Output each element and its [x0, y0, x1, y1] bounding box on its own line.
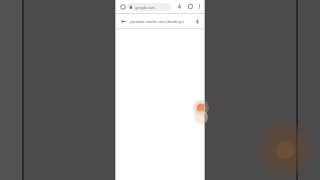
- staticText: google.com: [135, 5, 155, 10]
- button[interactable]: Back: [119, 17, 127, 25]
- button[interactable]: Voice search: [193, 17, 201, 25]
- button[interactable]: google.com: [127, 3, 171, 11]
- staticText: youtube studio core desktop s: [130, 19, 184, 24]
- button[interactable]: Search: [118, 2, 127, 11]
- button[interactable]: More options: [197, 2, 202, 11]
- button[interactable]: Switch tabs: [186, 2, 195, 11]
- button[interactable]: Back: [116, 14, 204, 28]
- button[interactable]: Voice search: [175, 2, 184, 11]
